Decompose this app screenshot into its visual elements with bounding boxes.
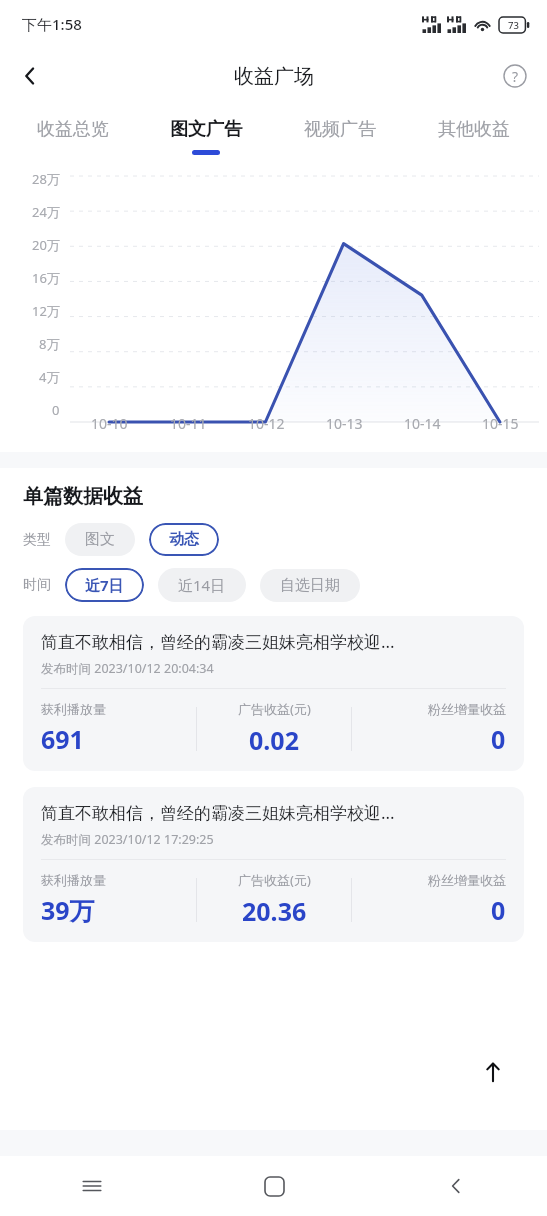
button[interactable]: 收益总览: [6, 104, 139, 160]
staticText: 28万: [32, 170, 60, 188]
staticText: 0: [491, 893, 506, 927]
staticText: 视频广告: [304, 118, 376, 141]
staticText: 粉丝增量收益: [428, 872, 506, 888]
staticText: 发布时间 2023/10/12 17:29:25: [41, 831, 214, 848]
staticText: 图文广告: [170, 118, 242, 141]
staticText: 4万: [39, 368, 60, 386]
button[interactable]: 简直不敢相信，曾经的霸凌三姐妹亮相学校迎...: [23, 616, 524, 771]
staticText: 类型: [23, 531, 51, 549]
button[interactable]: 自选日期: [260, 569, 360, 602]
staticText: 图文: [85, 530, 115, 549]
staticText: 时间: [23, 576, 51, 594]
button[interactable]: Back: [365, 1156, 547, 1216]
staticText: 10-13: [326, 414, 363, 433]
staticText: 20万: [32, 236, 60, 254]
button[interactable]: Help: [493, 54, 537, 98]
staticText: 收益总览: [37, 118, 109, 141]
staticText: 简直不敢相信，曾经的霸凌三姐妹亮相学校迎...: [41, 801, 395, 824]
staticText: 近14日: [178, 575, 226, 595]
staticText: 10-15: [482, 414, 519, 433]
button[interactable]: Home: [183, 1156, 365, 1216]
staticText: 收益广场: [234, 64, 314, 89]
button[interactable]: Back: [8, 54, 52, 98]
button[interactable]: 视频广告: [273, 104, 407, 160]
button[interactable]: 图文广告: [139, 104, 273, 160]
staticText: 39万: [41, 893, 95, 927]
staticText: 0: [491, 722, 506, 756]
staticText: 广告收益(元): [238, 871, 311, 889]
staticText: 下午1:58: [22, 14, 82, 34]
staticText: 单篇数据收益: [23, 484, 143, 509]
staticText: 动态: [169, 530, 199, 549]
staticText: 12万: [32, 302, 60, 320]
staticText: 广告收益(元): [238, 700, 311, 718]
staticText: 691: [41, 722, 84, 756]
staticText: 24万: [32, 203, 60, 221]
staticText: 0.02: [249, 723, 299, 757]
staticText: 近7日: [85, 575, 124, 595]
button[interactable]: 动态: [149, 523, 219, 556]
staticText: 10-14: [404, 414, 441, 433]
staticText: 简直不敢相信，曾经的霸凌三姐妹亮相学校迎...: [41, 630, 395, 653]
staticText: 10-12: [248, 414, 285, 433]
staticText: 粉丝增量收益: [428, 701, 506, 717]
button[interactable]: 图文: [65, 523, 135, 556]
staticText: 发布时间 2023/10/12 20:04:34: [41, 660, 214, 677]
staticText: 73: [508, 19, 519, 32]
button[interactable]: Scroll to top: [467, 1046, 519, 1098]
button[interactable]: 简直不敢相信，曾经的霸凌三姐妹亮相学校迎...: [23, 787, 524, 942]
staticText: 10-11: [170, 414, 207, 433]
staticText: 0: [52, 401, 60, 419]
staticText: 获利播放量: [41, 872, 106, 888]
button[interactable]: 近7日: [65, 568, 144, 602]
staticText: 获利播放量: [41, 701, 106, 717]
staticText: 自选日期: [280, 576, 340, 595]
button[interactable]: 其他收益: [407, 104, 541, 160]
staticText: ?: [512, 67, 519, 86]
staticText: 10-10: [91, 414, 128, 433]
staticText: 8万: [39, 335, 60, 353]
staticText: 20.36: [242, 894, 307, 928]
staticText: 16万: [32, 269, 60, 287]
button[interactable]: 近14日: [158, 568, 246, 602]
button[interactable]: Recents: [0, 1156, 183, 1216]
staticText: 其他收益: [438, 118, 510, 141]
